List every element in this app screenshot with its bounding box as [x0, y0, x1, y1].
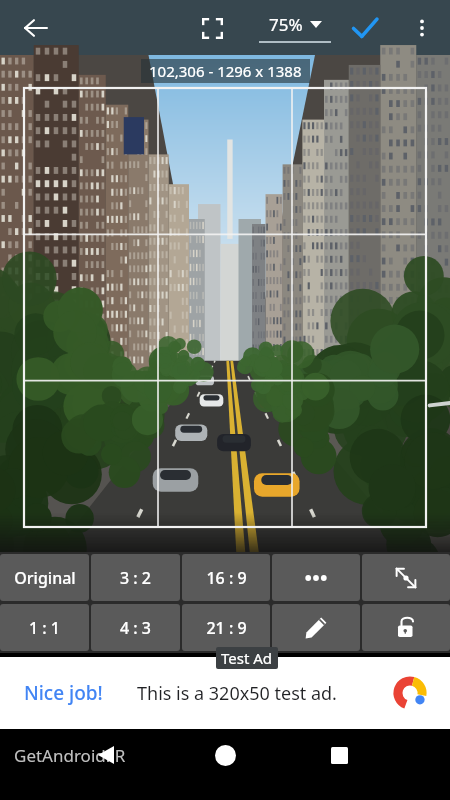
- staticText: 4 : 3: [120, 617, 151, 639]
- staticText: Test Ad: [221, 648, 273, 668]
- staticText: 3 : 2: [120, 567, 151, 589]
- button[interactable]: Original: [0, 554, 89, 601]
- staticText: Nice job!: [24, 680, 103, 706]
- button[interactable]: Unlock aspect ratio: [362, 604, 450, 651]
- staticText: 75%: [269, 13, 303, 36]
- staticText: 16 : 9: [206, 567, 247, 589]
- button[interactable]: More options: [400, 6, 444, 50]
- button[interactable]: 4 : 3: [91, 604, 180, 651]
- staticText: 21 : 9: [206, 617, 247, 639]
- button[interactable]: 3 : 2: [91, 554, 180, 601]
- staticText: This is a 320x50 test ad.: [137, 681, 337, 706]
- button[interactable]: Nice job!: [0, 657, 450, 729]
- button[interactable]: Fit to screen: [190, 6, 234, 50]
- button[interactable]: 1 : 1: [0, 604, 89, 651]
- button[interactable]: Home: [201, 731, 249, 779]
- button[interactable]: 21 : 9: [182, 604, 270, 651]
- button[interactable]: More ratios: [272, 554, 360, 601]
- staticText: Original: [14, 567, 76, 589]
- button[interactable]: 75%: [255, 6, 335, 50]
- button[interactable]: Free resize: [362, 554, 450, 601]
- button[interactable]: Back: [84, 733, 128, 777]
- staticText: 102,306 - 1296 x 1388: [149, 61, 302, 81]
- button[interactable]: Recent apps: [316, 732, 362, 778]
- staticText: GetAndroid.iR: [14, 744, 126, 767]
- button[interactable]: Back: [12, 4, 60, 52]
- staticText: 1 : 1: [29, 617, 60, 639]
- button[interactable]: Apply: [342, 5, 388, 51]
- button[interactable]: 16 : 9: [182, 554, 270, 601]
- button[interactable]: Custom ratio: [272, 604, 360, 651]
